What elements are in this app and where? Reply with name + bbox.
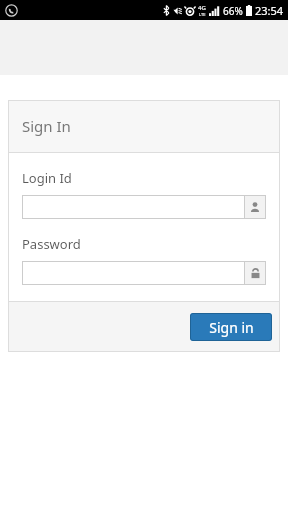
staticText: 23:54 <box>255 3 284 18</box>
button[interactable]: User <box>22 195 266 219</box>
button[interactable]: Sign in <box>190 313 272 341</box>
staticText: 4G <box>198 4 206 12</box>
staticText: 66% <box>223 4 243 18</box>
staticText: Password <box>22 235 81 253</box>
staticText: Sign in <box>209 318 254 337</box>
staticText: Sign In <box>22 116 71 136</box>
other: Password <box>244 261 266 285</box>
other: User <box>244 195 266 219</box>
staticText: LTE <box>199 12 206 17</box>
staticText: Login Id <box>22 169 72 187</box>
button[interactable]: Password <box>22 261 266 285</box>
